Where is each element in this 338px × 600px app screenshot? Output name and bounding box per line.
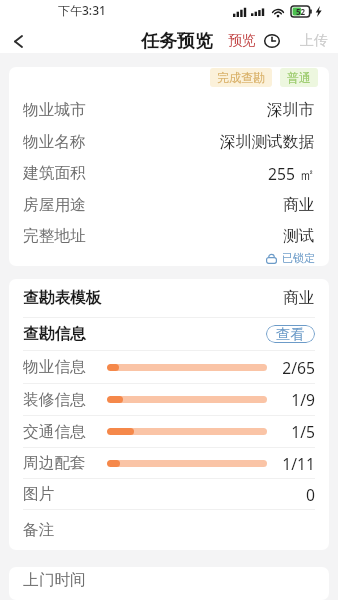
staticText: 0 — [306, 484, 315, 505]
staticText: 完成查勘 — [217, 70, 265, 85]
button[interactable]: 上传 — [300, 32, 328, 50]
staticText: 建筑面积 — [23, 163, 86, 183]
staticText: 深圳测试数据 — [220, 132, 315, 152]
staticText: 查勘信息 — [23, 324, 86, 344]
button[interactable]: 预览 — [228, 32, 280, 50]
staticText: 物业城市 — [23, 100, 86, 120]
staticText: 交通信息 — [23, 422, 95, 442]
staticText: 查勘表模板 — [23, 288, 102, 308]
staticText: 物业名称 — [23, 132, 86, 152]
staticText: 已锁定 — [282, 251, 315, 265]
staticText: 1/5 — [281, 421, 315, 442]
staticText: 查看 — [276, 325, 305, 343]
staticText: 预览 — [228, 32, 256, 50]
staticText: 1/9 — [281, 389, 315, 410]
staticText: 任务预览 — [141, 30, 213, 53]
staticText: 装修信息 — [23, 390, 95, 410]
staticText: 下午3:31 — [58, 2, 106, 18]
staticText: 上门时间 — [23, 570, 86, 590]
staticText: 普通 — [287, 70, 311, 85]
staticText: 测试 — [283, 226, 315, 246]
staticText: 1/11 — [281, 453, 315, 474]
staticText: 房屋用途 — [23, 195, 86, 215]
staticText: 备注 — [23, 520, 55, 540]
staticText: 深圳市 — [267, 100, 315, 120]
staticText: 商业 — [283, 195, 315, 215]
staticText: 商业 — [283, 288, 315, 308]
staticText: 255 ㎡ — [268, 163, 315, 184]
button[interactable]: 查看 — [266, 325, 315, 343]
staticText: 物业信息 — [23, 357, 95, 377]
staticText: 图片 — [23, 484, 55, 504]
staticText: 2/65 — [281, 357, 315, 378]
staticText: 周边配套 — [23, 453, 95, 473]
button[interactable]: Back — [3, 26, 33, 56]
staticText: 52 — [296, 6, 306, 17]
staticText: 完整地址 — [23, 226, 86, 246]
